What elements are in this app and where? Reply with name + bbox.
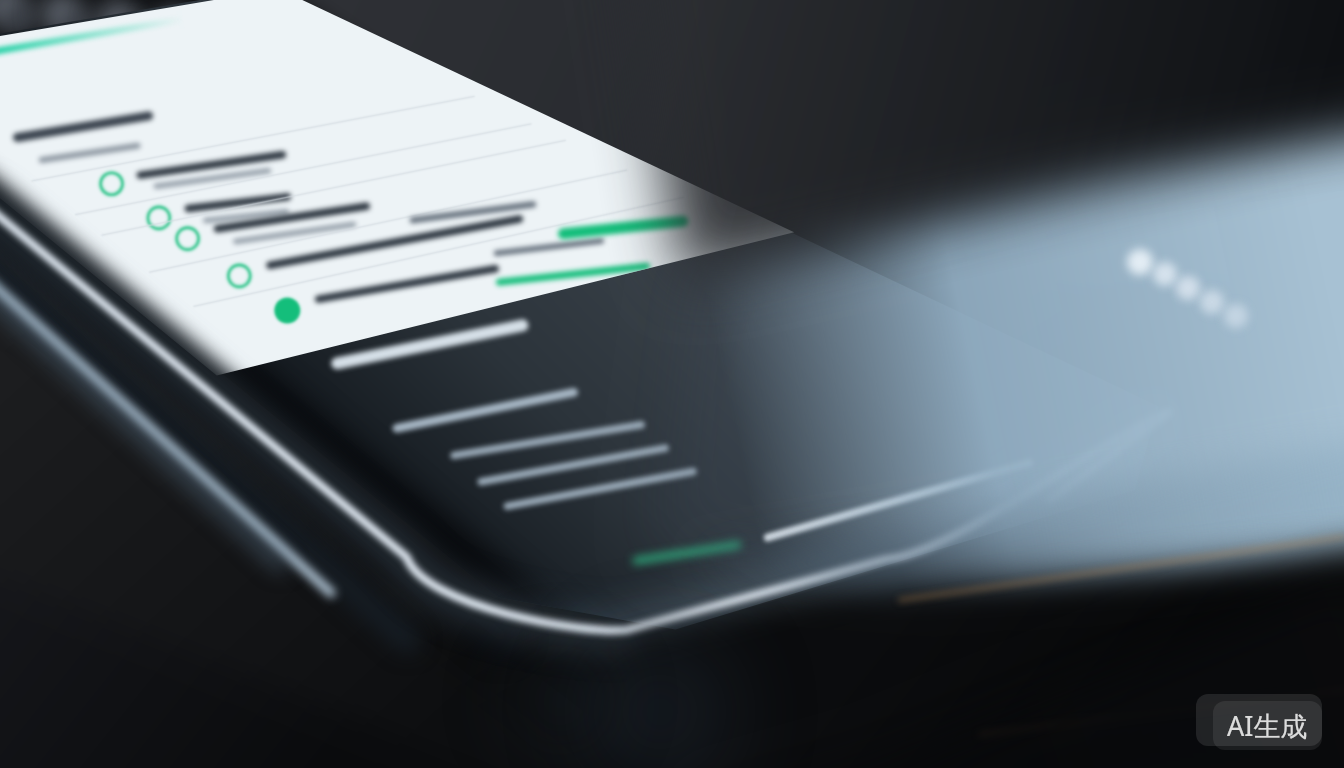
- button[interactable]: AI生成: [1213, 701, 1322, 750]
- other: Smartphone showing an app list: [0, 0, 1344, 768]
- staticText: AI生成: [1227, 707, 1308, 744]
